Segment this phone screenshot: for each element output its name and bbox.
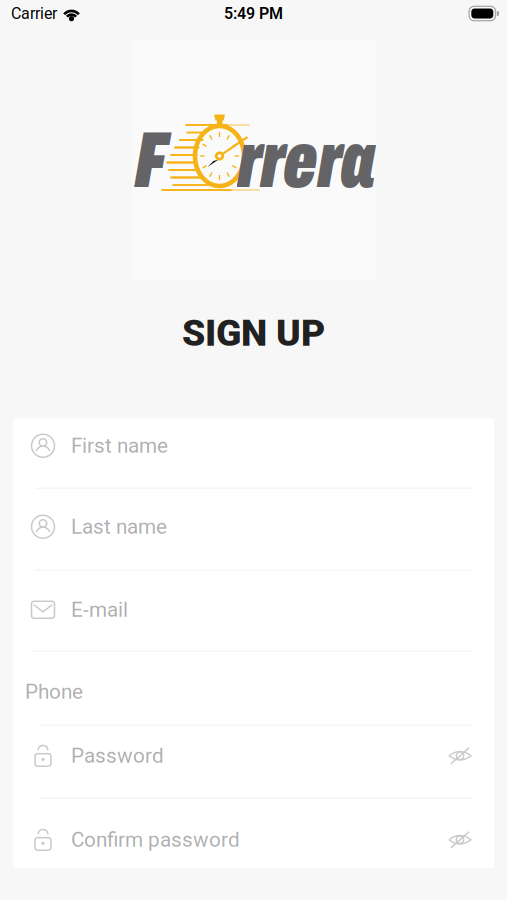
staticText: Carrier [11,4,57,23]
staticText: Phone [25,680,83,704]
staticText: Confirm password [71,828,240,852]
button[interactable]: Phone [13,652,494,725]
staticText: E-mail [71,598,128,622]
staticText: Last name [71,515,167,539]
button[interactable]: E-mail [13,571,494,651]
staticText: F [134,118,166,204]
button[interactable]: Last name [13,489,494,570]
staticText: 5:49 PM [224,4,283,23]
staticText: SIGN UP [182,311,325,355]
staticText: First name [71,434,168,458]
button[interactable]: Confirm password [13,799,494,868]
button[interactable]: First name [13,419,494,488]
button[interactable]: Password [13,726,494,798]
staticText: rrera [237,118,375,204]
staticText: Password [71,744,164,768]
